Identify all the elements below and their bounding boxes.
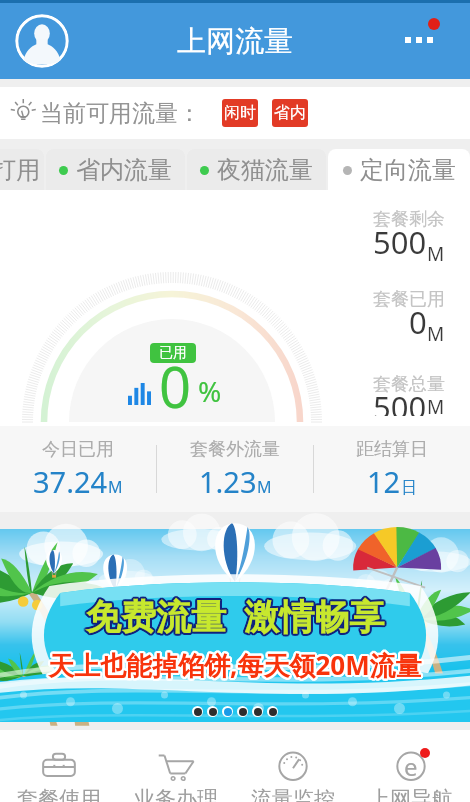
button[interactable]: 距结算日 (314, 438, 470, 501)
staticText: 天上也能掉馅饼,每天领20M流量 (50, 646, 424, 682)
staticText: 定向流量 (360, 155, 456, 185)
staticText: 天上也能掉馅饼,每天领20M流量 (46, 648, 420, 684)
staticText: 套餐外流量 (190, 438, 280, 461)
staticText: 套餐使用 (17, 786, 101, 802)
button[interactable]: 夜猫流量 (187, 149, 326, 190)
staticText: 免费流量 激情畅享 (86, 592, 385, 640)
staticText: 闲时 (224, 103, 256, 123)
staticText: 省内流量 (76, 155, 172, 185)
staticText: M (257, 476, 272, 498)
button[interactable]: 闲时 (222, 99, 258, 127)
staticText: M (427, 321, 445, 347)
button[interactable]: e (352, 730, 470, 802)
staticText: 免费流量 激情畅享 (86, 590, 385, 638)
staticText: 天上也能掉馅饼,每天领20M流量 (47, 645, 421, 681)
staticText: 1.23 (199, 462, 257, 501)
staticText: 500 (373, 386, 427, 416)
staticText: % (198, 372, 222, 410)
staticText: 免费流量 激情畅享 (84, 591, 383, 639)
staticText: 0 (409, 301, 427, 343)
staticText: 免费流量 激情畅享 (84, 592, 383, 640)
staticText: 天上也能掉馅饼,每天领20M流量 (46, 647, 420, 683)
staticText: 省内 (274, 103, 306, 123)
staticText: 免费流量 激情畅享 (87, 591, 386, 639)
staticText: 已用 (159, 344, 187, 362)
staticText: 免费流量 激情畅享 (85, 591, 384, 639)
button[interactable]: 免费流量 激情畅享 banner (0, 529, 470, 722)
button[interactable]: Profile (15, 14, 69, 68)
button[interactable]: More options (396, 9, 456, 69)
button[interactable]: 省内 (272, 99, 308, 127)
staticText: 天上也能掉馅饼,每天领20M流量 (48, 649, 422, 685)
staticText: M (427, 394, 445, 420)
button[interactable]: 流量监控 (234, 730, 352, 802)
staticText: 天上也能掉馅饼,每天领20M流量 (49, 647, 423, 683)
staticText: 套餐剩余 (373, 208, 445, 231)
staticText: 37.24 (33, 462, 108, 501)
staticText: 天上也能掉馅饼,每天领20M流量 (48, 646, 422, 682)
staticText: M (108, 476, 123, 498)
staticText: 免费流量 激情畅享 (85, 593, 384, 641)
button[interactable]: 打用 (0, 149, 44, 190)
staticText: e (404, 750, 418, 783)
staticText: 上网导航 (369, 786, 453, 802)
button[interactable]: 套餐使用 (0, 730, 117, 802)
staticText: 免费流量 激情畅享 (88, 593, 387, 641)
staticText: 0 (159, 348, 192, 424)
staticText: 免费流量 激情畅享 (85, 592, 384, 640)
staticText: 天上也能掉馅饼,每天领20M流量 (47, 648, 421, 684)
button[interactable]: 今日已用 (0, 438, 156, 501)
button[interactable]: 省内流量 (46, 149, 185, 190)
staticText: 免费流量 激情畅享 (88, 591, 387, 639)
staticText: 免费流量 激情畅享 (86, 591, 385, 639)
staticText: 天上也能掉馅饼,每天领20M流量 (48, 645, 422, 681)
staticText: 免费流量 激情畅享 (87, 593, 386, 641)
staticText: 打用 (0, 155, 40, 185)
staticText: 500 (373, 221, 427, 263)
staticText: 天上也能掉馅饼,每天领20M流量 (47, 647, 421, 683)
button[interactable]: 定向流量 (328, 149, 470, 190)
staticText: 天上也能掉馅饼,每天领20M流量 (49, 645, 423, 681)
staticText: 套餐已用 (373, 288, 445, 311)
staticText: 天上也能掉馅饼,每天领20M流量 (50, 647, 424, 683)
staticText: 距结算日 (356, 438, 428, 461)
staticText: 天上也能掉馅饼,每天领20M流量 (48, 647, 422, 683)
staticText: 天上也能掉馅饼,每天领20M流量 (49, 648, 423, 684)
staticText: 天上也能掉馅饼,每天领20M流量 (49, 649, 423, 685)
staticText: 上网流量 (177, 23, 293, 60)
staticText: 免费流量 激情畅享 (87, 594, 386, 642)
staticText: 免费流量 激情畅享 (84, 593, 383, 641)
staticText: 天上也能掉馅饼,每天领20M流量 (49, 646, 423, 682)
staticText: 免费流量 激情畅享 (85, 594, 384, 642)
button[interactable]: 业务办理 (117, 730, 234, 802)
staticText: 套餐总量 (373, 373, 445, 396)
staticText: 免费流量 激情畅享 (85, 590, 384, 638)
staticText: 免费流量 激情畅享 (87, 592, 386, 640)
staticText: 业务办理 (134, 786, 218, 802)
staticText: 天上也能掉馅饼,每天领20M流量 (47, 649, 421, 685)
staticText: 当前可用流量： (40, 99, 201, 128)
staticText: 免费流量 激情畅享 (88, 592, 387, 640)
staticText: 免费流量 激情畅享 (86, 593, 385, 641)
staticText: 免费流量 激情畅享 (86, 594, 385, 642)
staticText: 12 (367, 462, 401, 501)
staticText: 天上也能掉馅饼,每天领20M流量 (46, 646, 420, 682)
staticText: 天上也能掉馅饼,每天领20M流量 (47, 646, 421, 682)
staticText: 天上也能掉馅饼,每天领20M流量 (48, 648, 422, 684)
staticText: 夜猫流量 (217, 155, 313, 185)
staticText: 日 (401, 478, 417, 498)
staticText: 流量监控 (251, 786, 335, 802)
staticText: 天上也能掉馅饼,每天领20M流量 (50, 648, 424, 684)
button[interactable]: 套餐外流量 (157, 438, 313, 501)
staticText: 免费流量 激情畅享 (87, 590, 386, 638)
staticText: 今日已用 (42, 438, 114, 461)
staticText: M (427, 241, 445, 267)
